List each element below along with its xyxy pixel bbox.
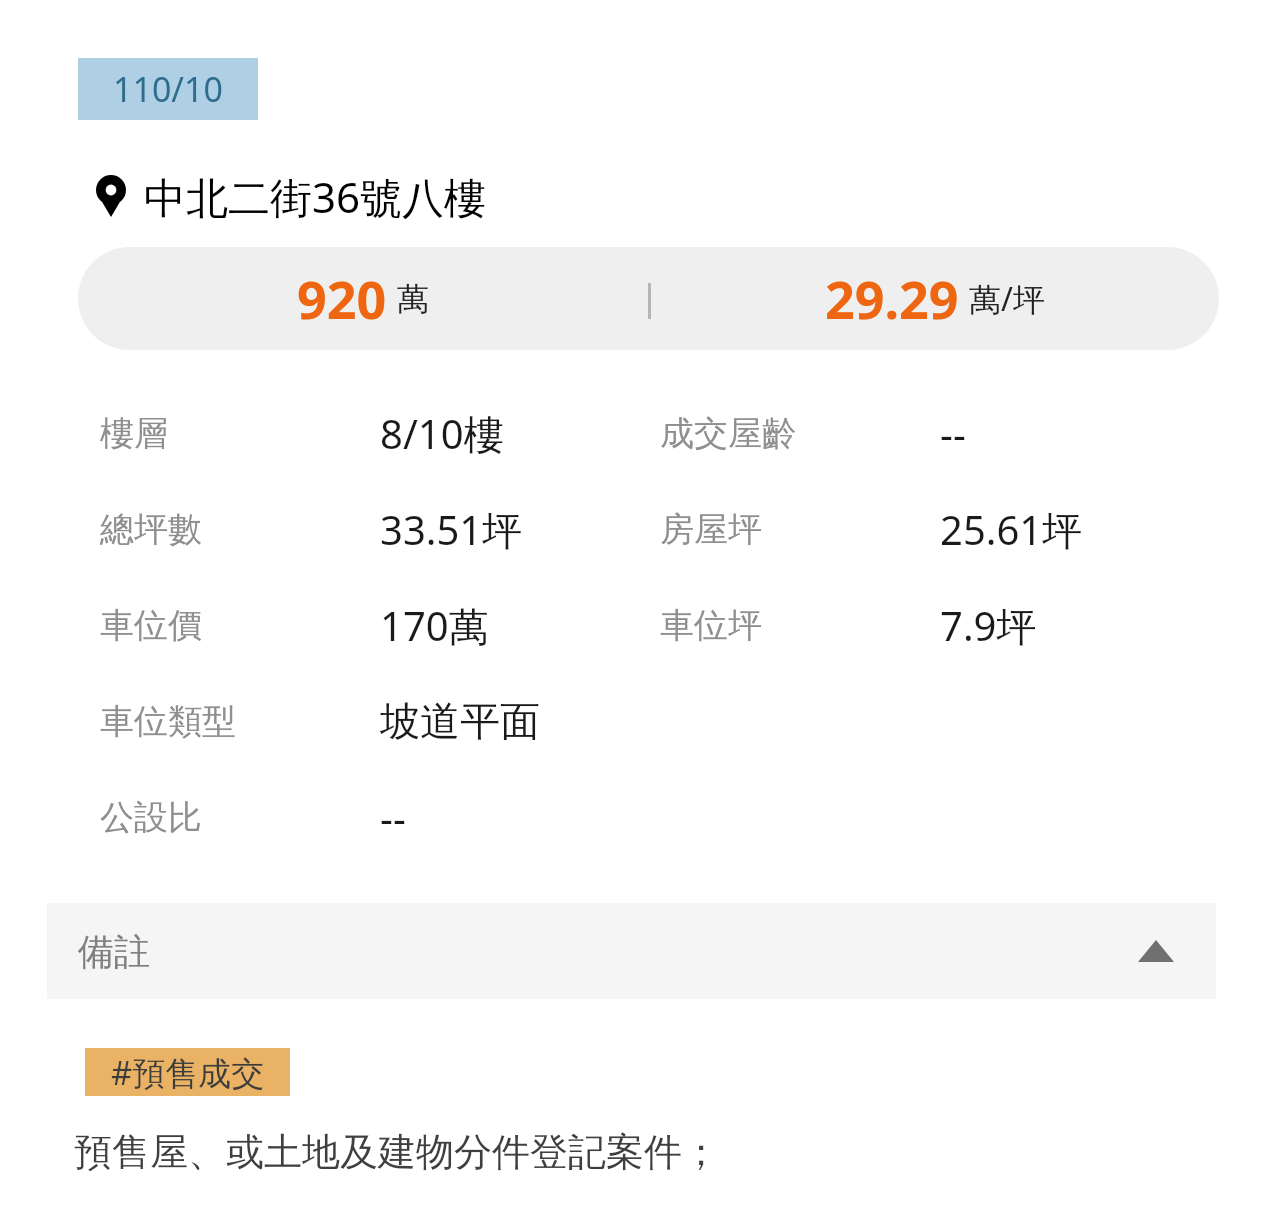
staticText: 坡道平面 [380, 696, 540, 746]
staticText: 備註 [78, 929, 150, 974]
staticText: -- [940, 406, 966, 460]
button[interactable]: 110/10 [78, 58, 258, 120]
staticText: 房屋坪 [660, 508, 762, 551]
staticText: 中北二街36號八樓 [144, 168, 487, 225]
staticText: 公設比 [100, 796, 202, 839]
staticText: 總坪數 [100, 508, 202, 551]
other: Collapse remarks [1138, 940, 1174, 962]
button[interactable]: #預售成交 [85, 1048, 290, 1096]
other: Location [96, 175, 126, 217]
staticText: 預售屋、或土地及建物分件登記案件； [74, 1128, 720, 1176]
staticText: 8/10樓 [380, 406, 504, 461]
staticText: 7.9坪 [940, 598, 1037, 653]
staticText: 33.51坪 [380, 502, 523, 557]
staticText: -- [380, 790, 406, 844]
staticText: 萬/坪 [969, 277, 1045, 321]
staticText: 車位坪 [660, 604, 762, 647]
staticText: 25.61坪 [940, 502, 1083, 557]
staticText: 29.29 [825, 263, 959, 334]
staticText: 成交屋齡 [660, 412, 796, 455]
staticText: 170萬 [380, 598, 489, 653]
staticText: 萬 [397, 279, 429, 319]
staticText: 車位類型 [100, 700, 236, 743]
button[interactable]: Location [96, 166, 487, 226]
staticText: #預售成交 [111, 1050, 265, 1095]
staticText: 110/10 [113, 66, 223, 112]
staticText: 920 [297, 263, 387, 334]
staticText: 車位價 [100, 604, 202, 647]
button[interactable]: 920 [78, 247, 1219, 350]
button[interactable]: 備註 [47, 903, 1216, 999]
staticText: 樓層 [100, 412, 168, 455]
